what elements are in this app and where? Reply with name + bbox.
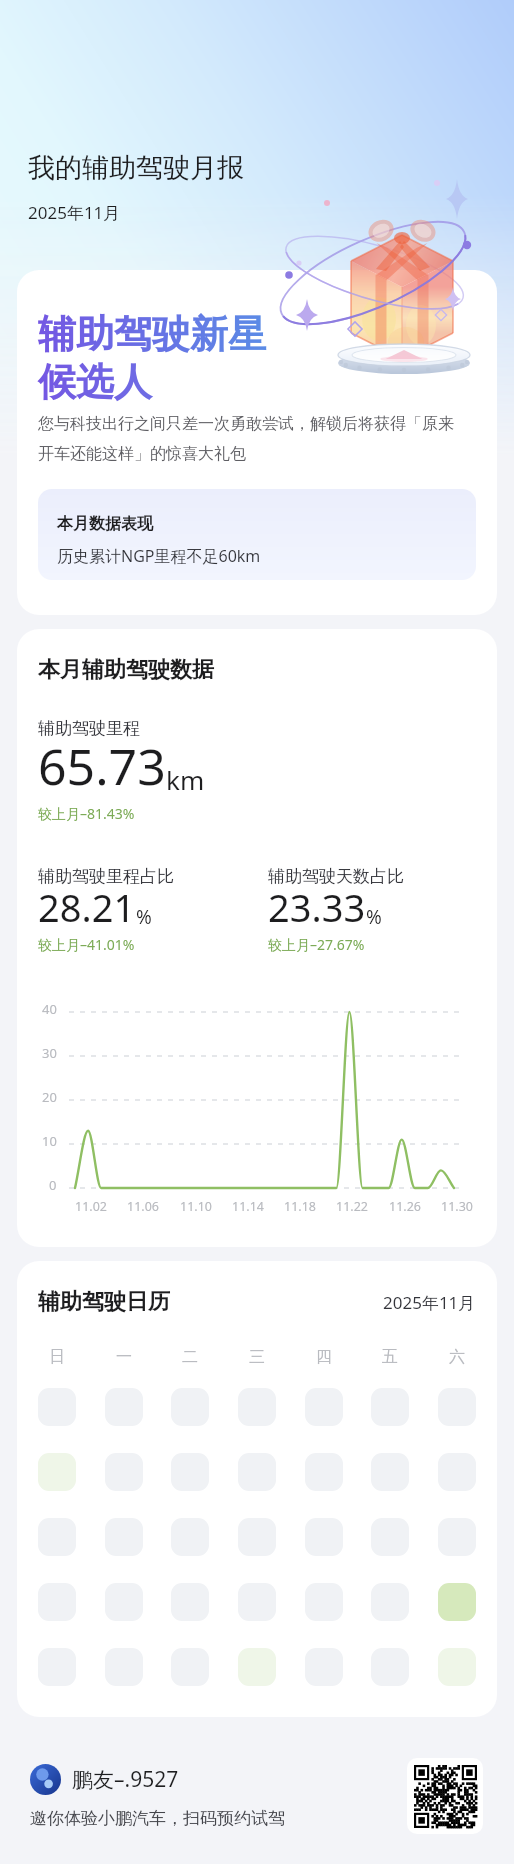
staticText: 三 <box>249 1347 265 1367</box>
staticText: 我的辅助驾驶月报 <box>28 151 244 185</box>
button[interactable]: 辅助驾驶新星 <box>17 270 497 615</box>
staticText: % <box>366 904 382 930</box>
button[interactable] <box>371 1453 409 1491</box>
staticText: 鹏友–.9527 <box>72 1765 179 1794</box>
staticText: 0 <box>49 1176 57 1194</box>
button[interactable] <box>371 1583 409 1621</box>
staticText: 11.14 <box>232 1198 264 1215</box>
button[interactable] <box>105 1453 143 1491</box>
staticText: 六 <box>449 1347 465 1367</box>
button[interactable] <box>305 1583 343 1621</box>
button[interactable] <box>38 1583 76 1621</box>
staticText: 2025年11月 <box>383 1291 476 1314</box>
staticText: 11.02 <box>75 1198 107 1215</box>
staticText: 23.33 <box>268 881 366 933</box>
button[interactable] <box>171 1453 209 1491</box>
staticText: 辅助驾驶新星 <box>38 310 266 358</box>
button[interactable] <box>38 1518 76 1556</box>
button[interactable] <box>438 1583 476 1621</box>
staticText: 11.30 <box>441 1198 473 1215</box>
staticText: 辅助驾驶天数占比 <box>268 866 404 887</box>
staticText: 2025年11月 <box>28 201 121 224</box>
staticText: 20 <box>42 1088 57 1106</box>
staticText: 辅助驾驶里程占比 <box>38 866 174 887</box>
staticText: 11.22 <box>336 1198 368 1215</box>
button[interactable]: 辅助驾驶日历 <box>17 1261 497 1717</box>
staticText: 较上月–41.01% <box>38 935 135 954</box>
button[interactable] <box>38 1388 76 1426</box>
staticText: 11.06 <box>127 1198 159 1215</box>
staticText: 65.73 <box>38 732 166 800</box>
other: 用户头像 <box>30 1764 61 1795</box>
button[interactable] <box>171 1583 209 1621</box>
button[interactable] <box>105 1583 143 1621</box>
staticText: 本月数据表现 <box>57 514 153 534</box>
button[interactable] <box>238 1583 276 1621</box>
staticText: % <box>136 904 152 930</box>
staticText: 历史累计NGP里程不足60km <box>57 545 261 567</box>
staticText: 10 <box>42 1132 57 1150</box>
button[interactable] <box>371 1388 409 1426</box>
button[interactable] <box>238 1453 276 1491</box>
button[interactable]: 本月辅助驾驶数据 <box>17 629 497 1247</box>
button[interactable] <box>238 1388 276 1426</box>
staticText: 四 <box>316 1347 332 1367</box>
staticText: 11.10 <box>180 1198 212 1215</box>
button[interactable] <box>305 1388 343 1426</box>
staticText: 本月辅助驾驶数据 <box>38 656 214 684</box>
staticText: 较上月–27.67% <box>268 935 365 954</box>
button[interactable] <box>171 1518 209 1556</box>
staticText: 28.21 <box>38 881 136 933</box>
button[interactable] <box>105 1388 143 1426</box>
button[interactable] <box>105 1648 143 1686</box>
staticText: 候选人 <box>38 358 152 406</box>
button[interactable] <box>438 1518 476 1556</box>
staticText: 11.18 <box>284 1198 316 1215</box>
button[interactable] <box>371 1648 409 1686</box>
button[interactable] <box>371 1518 409 1556</box>
staticText: 二 <box>182 1347 198 1367</box>
staticText: 40 <box>42 1000 57 1018</box>
staticText: 辅助驾驶日历 <box>38 1288 170 1316</box>
button[interactable] <box>238 1518 276 1556</box>
staticText: 辅助驾驶里程 <box>38 718 140 739</box>
button[interactable] <box>305 1518 343 1556</box>
button[interactable] <box>438 1388 476 1426</box>
staticText: 日 <box>49 1347 65 1367</box>
staticText: 较上月–81.43% <box>38 804 135 823</box>
button[interactable] <box>305 1648 343 1686</box>
staticText: 您与科技出行之间只差一次勇敢尝试，解锁后将获得「原来 开车还能这样」的惊喜大礼包 <box>38 414 454 464</box>
button[interactable] <box>238 1648 276 1686</box>
button[interactable] <box>38 1453 76 1491</box>
button[interactable] <box>438 1453 476 1491</box>
button[interactable] <box>38 1648 76 1686</box>
staticText: 邀你体验小鹏汽车，扫码预约试驾 <box>30 1808 285 1829</box>
staticText: 一 <box>116 1347 132 1367</box>
button[interactable] <box>105 1518 143 1556</box>
button[interactable] <box>171 1388 209 1426</box>
staticText: 30 <box>42 1044 57 1062</box>
button[interactable] <box>438 1648 476 1686</box>
staticText: km <box>166 762 205 797</box>
staticText: 11.26 <box>389 1198 421 1215</box>
staticText: 五 <box>382 1347 398 1367</box>
button[interactable] <box>171 1648 209 1686</box>
button[interactable] <box>305 1453 343 1491</box>
other: 二维码 <box>407 1758 483 1834</box>
